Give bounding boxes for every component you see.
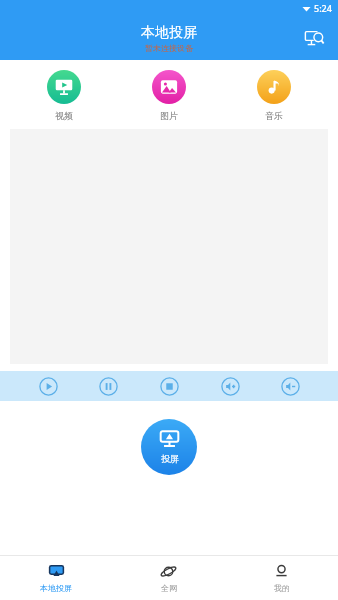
staticText: 视频 [55,110,73,121]
staticText: 暂未连接设备 [145,43,193,53]
button[interactable]: Play [35,373,61,399]
button[interactable]: 全网 [112,556,225,600]
button[interactable]: Search devices [298,22,330,54]
staticText: 我的 [274,583,290,593]
staticText: 音乐 [265,110,283,121]
button[interactable]: Volume down [277,373,303,399]
button[interactable]: 投屏 [141,419,197,475]
staticText: 本地投屏 [40,583,72,593]
button[interactable]: Stop [156,373,182,399]
button[interactable]: Volume up [217,373,243,399]
staticText: 图片 [160,110,178,121]
button[interactable]: 图片 [128,68,210,123]
button[interactable]: 音乐 [233,68,315,123]
button[interactable]: 本地投屏 [0,556,112,600]
button[interactable]: 视频 [23,68,105,123]
staticText: 5:24 [314,2,332,14]
staticText: 全网 [161,583,177,593]
button[interactable]: Pause [95,373,121,399]
staticText: 本地投屏 [141,24,197,42]
button[interactable]: 我的 [225,556,338,600]
staticText: 投屏 [161,453,179,464]
